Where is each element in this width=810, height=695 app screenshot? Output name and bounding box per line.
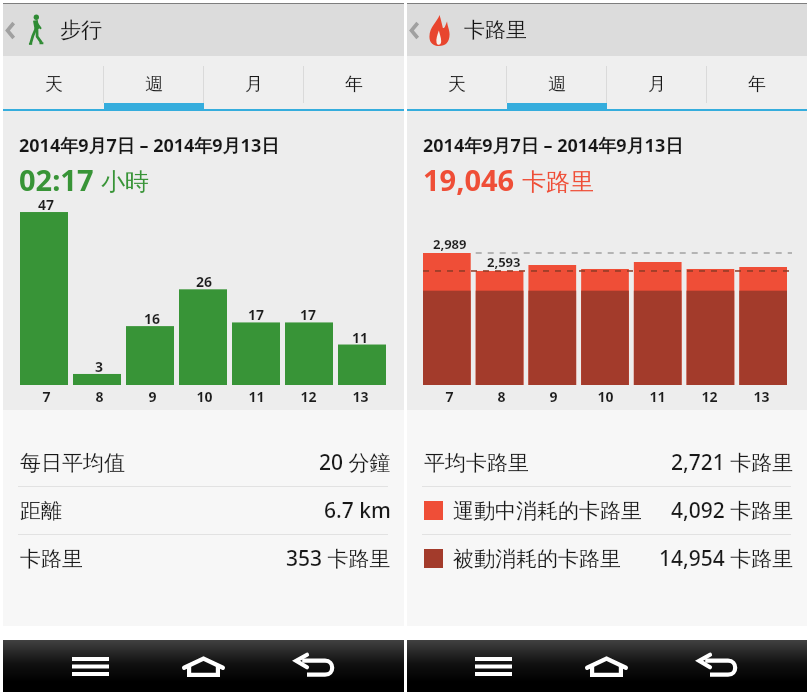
button[interactable]: 平均卡路里: [407, 439, 807, 487]
staticText: 26: [196, 272, 213, 291]
staticText: 7: [42, 387, 51, 406]
other: Back: [4, 19, 16, 41]
button[interactable]: 被動消耗的卡路里: [407, 535, 807, 582]
button[interactable]: Back: [691, 640, 745, 692]
staticText: 13: [352, 387, 369, 406]
button[interactable]: Back: [3, 4, 404, 56]
button[interactable]: 週: [507, 56, 607, 103]
staticText: 14,954 卡路里: [659, 544, 794, 573]
staticText: 19,046: [423, 160, 515, 199]
staticText: 16: [144, 309, 161, 328]
staticText: 6.7 km: [324, 496, 391, 525]
staticText: 8: [497, 387, 506, 406]
button[interactable]: 卡路里: [3, 535, 404, 582]
staticText: 9: [148, 387, 157, 406]
button[interactable]: Menu: [63, 640, 117, 692]
button[interactable]: Home: [176, 640, 230, 692]
staticText: 2,593: [487, 253, 521, 271]
staticText: 8: [95, 387, 104, 406]
staticText: 卡路里: [522, 167, 594, 197]
staticText: 4,092 卡路里: [671, 496, 794, 525]
button[interactable]: 距離: [3, 487, 404, 535]
staticText: 2014年9月7日 – 2014年9月13日: [19, 133, 280, 158]
staticText: 運動中消耗的卡路里: [453, 498, 642, 524]
staticText: 距離: [20, 498, 62, 524]
button[interactable]: 年: [707, 56, 807, 103]
staticText: 353 卡路里: [286, 544, 391, 573]
staticText: 天: [448, 73, 466, 96]
staticText: 17: [300, 305, 317, 324]
button[interactable]: 天: [3, 56, 104, 103]
staticText: 12: [300, 387, 317, 406]
staticText: 9: [549, 387, 558, 406]
staticText: 小時: [101, 167, 149, 197]
staticText: 02:17: [19, 160, 94, 199]
button[interactable]: 年: [304, 56, 404, 103]
staticText: 17: [248, 305, 265, 324]
staticText: 週: [548, 73, 566, 96]
staticText: 被動消耗的卡路里: [453, 546, 621, 572]
staticText: 12: [701, 387, 718, 406]
button[interactable]: 月: [607, 56, 707, 103]
staticText: 卡路里: [464, 17, 527, 43]
staticText: 11: [352, 328, 369, 347]
staticText: 10: [597, 387, 614, 406]
staticText: 每日平均值: [20, 450, 125, 476]
other: Back: [408, 19, 420, 41]
staticText: 年: [748, 73, 766, 96]
staticText: 20 分鐘: [319, 448, 391, 477]
staticText: 年: [345, 73, 363, 96]
button[interactable]: 運動中消耗的卡路里: [407, 487, 807, 535]
staticText: 2014年9月7日 – 2014年9月13日: [423, 133, 684, 158]
staticText: 10: [196, 387, 213, 406]
staticText: 月: [245, 73, 263, 96]
button[interactable]: 每日平均值: [3, 439, 404, 487]
staticText: 7: [445, 387, 454, 406]
staticText: 平均卡路里: [424, 450, 529, 476]
button[interactable]: 天: [407, 56, 507, 103]
staticText: 週: [145, 73, 163, 96]
staticText: 天: [45, 73, 63, 96]
staticText: 月: [648, 73, 666, 96]
button[interactable]: Home: [579, 640, 633, 692]
button[interactable]: 週: [104, 56, 204, 103]
button[interactable]: 月: [204, 56, 304, 103]
button[interactable]: Back: [288, 640, 342, 692]
staticText: 13: [753, 387, 770, 406]
staticText: 卡路里: [20, 546, 83, 572]
staticText: 3: [95, 357, 104, 376]
staticText: 步行: [60, 17, 102, 43]
button[interactable]: Back: [407, 4, 807, 56]
staticText: 11: [248, 387, 265, 406]
staticText: 47: [38, 195, 55, 214]
staticText: 2,989: [433, 235, 467, 253]
staticText: 11: [649, 387, 666, 406]
button[interactable]: Menu: [466, 640, 520, 692]
staticText: 2,721 卡路里: [671, 448, 794, 477]
